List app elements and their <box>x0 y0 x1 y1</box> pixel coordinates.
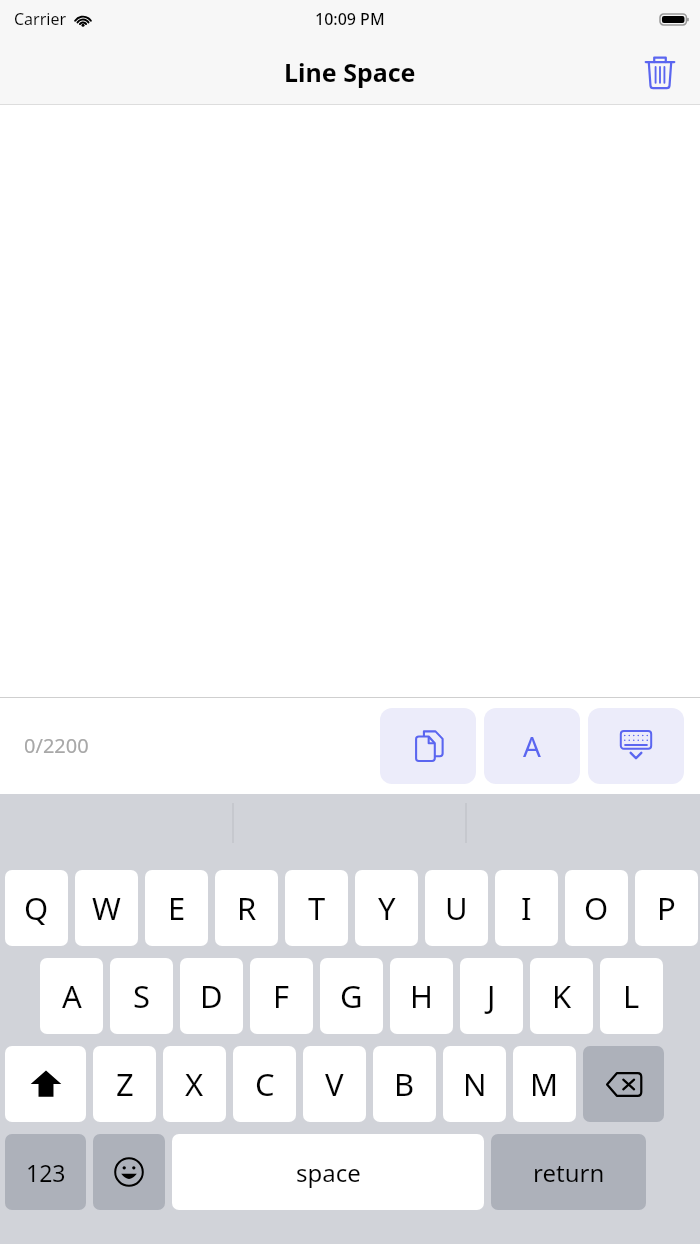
button[interactable]: Delete <box>638 50 682 94</box>
staticText: 10:09 PM <box>315 8 385 30</box>
button[interactable]: M <box>513 1046 576 1122</box>
staticText: N <box>463 1063 487 1105</box>
staticText: space <box>296 1156 361 1189</box>
button[interactable]: Z <box>93 1046 156 1122</box>
button[interactable]: R <box>215 870 278 946</box>
staticText: K <box>552 975 572 1017</box>
staticText: Y <box>378 887 396 929</box>
button[interactable]: Copy <box>380 708 476 784</box>
staticText: F <box>273 975 290 1017</box>
button[interactable]: K <box>530 958 593 1034</box>
staticText: X <box>185 1063 204 1105</box>
button[interactable]: Hide keyboard <box>588 708 684 784</box>
staticText: S <box>133 975 151 1017</box>
button[interactable]: G <box>320 958 383 1034</box>
button[interactable]: C <box>233 1046 296 1122</box>
button[interactable]: L <box>600 958 663 1034</box>
staticText: C <box>255 1063 275 1105</box>
staticText: A <box>523 727 541 765</box>
staticText: V <box>325 1063 344 1105</box>
staticText: return <box>533 1156 605 1189</box>
staticText: 123 <box>26 1157 66 1188</box>
button[interactable]: U <box>425 870 488 946</box>
staticText: P <box>657 887 676 929</box>
button[interactable]: Shift <box>5 1046 86 1122</box>
button[interactable]: Emoji <box>93 1134 165 1210</box>
button[interactable]: B <box>373 1046 436 1122</box>
button[interactable]: 123 <box>5 1134 86 1210</box>
staticText: Z <box>116 1063 134 1105</box>
staticText: W <box>92 887 121 929</box>
staticText: Q <box>24 887 49 929</box>
button[interactable]: H <box>390 958 453 1034</box>
button[interactable]: P <box>635 870 698 946</box>
button[interactable]: Q <box>5 870 68 946</box>
staticText: Line Space <box>284 55 416 89</box>
button[interactable]: E <box>145 870 208 946</box>
button[interactable]: V <box>303 1046 366 1122</box>
staticText: 0/2200 <box>24 732 89 759</box>
staticText: B <box>394 1063 415 1105</box>
button[interactable]: O <box>565 870 628 946</box>
staticText: J <box>487 975 496 1017</box>
button[interactable]: N <box>443 1046 506 1122</box>
button[interactable]: F <box>250 958 313 1034</box>
staticText: D <box>200 975 223 1017</box>
staticText: U <box>445 887 468 929</box>
button[interactable]: Y <box>355 870 418 946</box>
button[interactable]: A <box>40 958 103 1034</box>
staticText: T <box>308 887 326 929</box>
staticText: E <box>168 887 186 929</box>
button[interactable]: X <box>163 1046 226 1122</box>
staticText: L <box>623 975 640 1017</box>
button[interactable]: Backspace <box>583 1046 664 1122</box>
button[interactable]: T <box>285 870 348 946</box>
button[interactable]: D <box>180 958 243 1034</box>
button[interactable]: I <box>495 870 558 946</box>
button[interactable]: space <box>172 1134 484 1210</box>
button[interactable]: return <box>491 1134 646 1210</box>
staticText: O <box>584 887 609 929</box>
button[interactable]: S <box>110 958 173 1034</box>
staticText: Carrier <box>14 8 67 30</box>
staticText: M <box>530 1063 559 1105</box>
button[interactable]: Font size <box>484 708 580 784</box>
staticText: H <box>410 975 433 1017</box>
button[interactable]: J <box>460 958 523 1034</box>
staticText: R <box>237 887 257 929</box>
button[interactable]: W <box>75 870 138 946</box>
staticText: G <box>340 975 363 1017</box>
staticText: I <box>521 887 532 929</box>
staticText: A <box>62 975 82 1017</box>
